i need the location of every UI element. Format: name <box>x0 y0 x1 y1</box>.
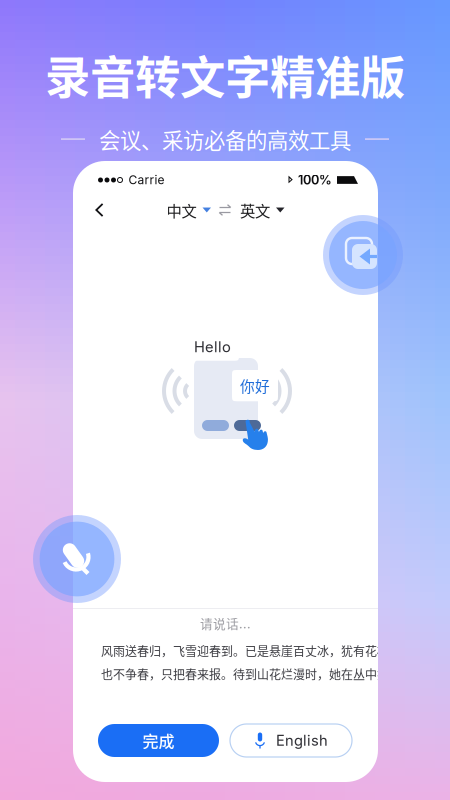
staticText: 完成 <box>142 729 174 752</box>
staticText: 英文 <box>240 199 270 221</box>
button[interactable]: English <box>230 724 352 757</box>
staticText: 录音转文字精准版 <box>45 42 405 108</box>
staticText: Carrie <box>128 173 164 187</box>
staticText: 你好 <box>240 375 270 396</box>
button[interactable]: Record <box>33 515 121 603</box>
staticText: 风雨送春归，飞雪迎春到。已是悬崖百丈冰，犹有花枝俏。俏 <box>101 642 406 659</box>
button[interactable]: Swap languages <box>214 196 237 223</box>
staticText: 中文 <box>166 199 196 221</box>
staticText: 也不争春，只把春来报。待到山花烂漫时，她在丛中笑。 <box>101 665 401 683</box>
button[interactable]: Import text <box>323 215 403 295</box>
staticText: 会议、采访必备的高效工具 <box>99 124 351 154</box>
staticText: 请说话... <box>200 614 251 632</box>
staticText: Hello <box>194 338 231 356</box>
button[interactable]: Back <box>73 193 118 227</box>
button[interactable]: Target language English <box>237 192 287 228</box>
staticText: English <box>276 732 328 749</box>
button[interactable]: Source language Chinese <box>163 192 214 228</box>
button[interactable]: 完成 <box>98 724 219 757</box>
staticText: 100% <box>298 172 332 188</box>
